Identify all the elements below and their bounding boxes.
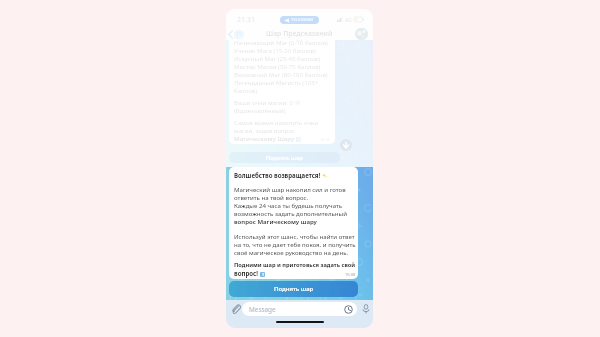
staticText: TELEGRAM: [291, 17, 314, 23]
staticText: возможность задать дополнительный: [234, 209, 347, 217]
other: Telegram is running: [284, 17, 314, 23]
staticText: 4G: [345, 16, 352, 23]
staticText: Начинающий Маг (0-10 баллов): [234, 38, 328, 46]
staticText: 21:31: [237, 15, 255, 25]
staticText: 15:08: [345, 272, 356, 277]
staticText: своё магическое руководство на день.: [234, 248, 349, 256]
staticText: Ученик Мага (15-20 баллов): [234, 46, 316, 54]
button[interactable]: Scroll to bottom: [340, 139, 352, 151]
staticText: магии, задав вопрос: [234, 126, 296, 134]
button[interactable]: Attach file: [230, 303, 242, 315]
staticText: Ваши очки магии: 0: [234, 98, 295, 106]
staticText: на то, что не дает тебе покоя, и получит…: [234, 240, 356, 248]
button[interactable]: Поднять шар: [229, 281, 358, 297]
staticText: Шар Предсказаний: [266, 29, 333, 38]
staticText: баллов): [234, 86, 258, 94]
staticText: Каждые 24 часа ты будешь получать: [234, 201, 343, 209]
staticText: вопрос!: [234, 269, 260, 277]
button[interactable]: Поднять шар: [229, 152, 340, 163]
staticText: 11: [236, 31, 242, 38]
button[interactable]: Record voice message: [361, 304, 371, 314]
staticText: Волшебство возвращается!: [234, 171, 322, 179]
staticText: 1: [298, 137, 300, 142]
button[interactable]: Back: [226, 29, 247, 40]
staticText: Поднять шар: [266, 154, 303, 162]
button[interactable]: Schedule message: [344, 305, 353, 314]
staticText: Легендарный Магистр (105+: [234, 78, 319, 86]
staticText: Искусный Маг (25-45 баллов): [234, 54, 320, 62]
button[interactable]: Chat profile: [355, 28, 368, 40]
staticText: Самое время накопить очки: [234, 118, 319, 126]
staticText: Подними шар и приготовься задать свой: [234, 261, 356, 269]
staticText: Поднять шар: [274, 285, 314, 293]
staticText: Магическому Шару: [234, 134, 296, 142]
staticText: ответить на твой вопрос.: [234, 193, 309, 201]
staticText: Используй этот шанс, чтобы найти ответ: [234, 232, 355, 240]
staticText: Магический шар накопил сил и готов: [234, 185, 346, 193]
staticText: Message: [249, 305, 276, 314]
staticText: Верховный Маг (80-100 баллов): [234, 70, 328, 78]
button[interactable]: Message: [242, 302, 357, 316]
staticText: вопрос Магическому шару: [234, 217, 317, 225]
staticText: 1: [262, 272, 264, 277]
staticText: (Вдохновлённый): [234, 106, 286, 114]
staticText: Мастер Магии (50-75 баллов): [234, 62, 321, 70]
